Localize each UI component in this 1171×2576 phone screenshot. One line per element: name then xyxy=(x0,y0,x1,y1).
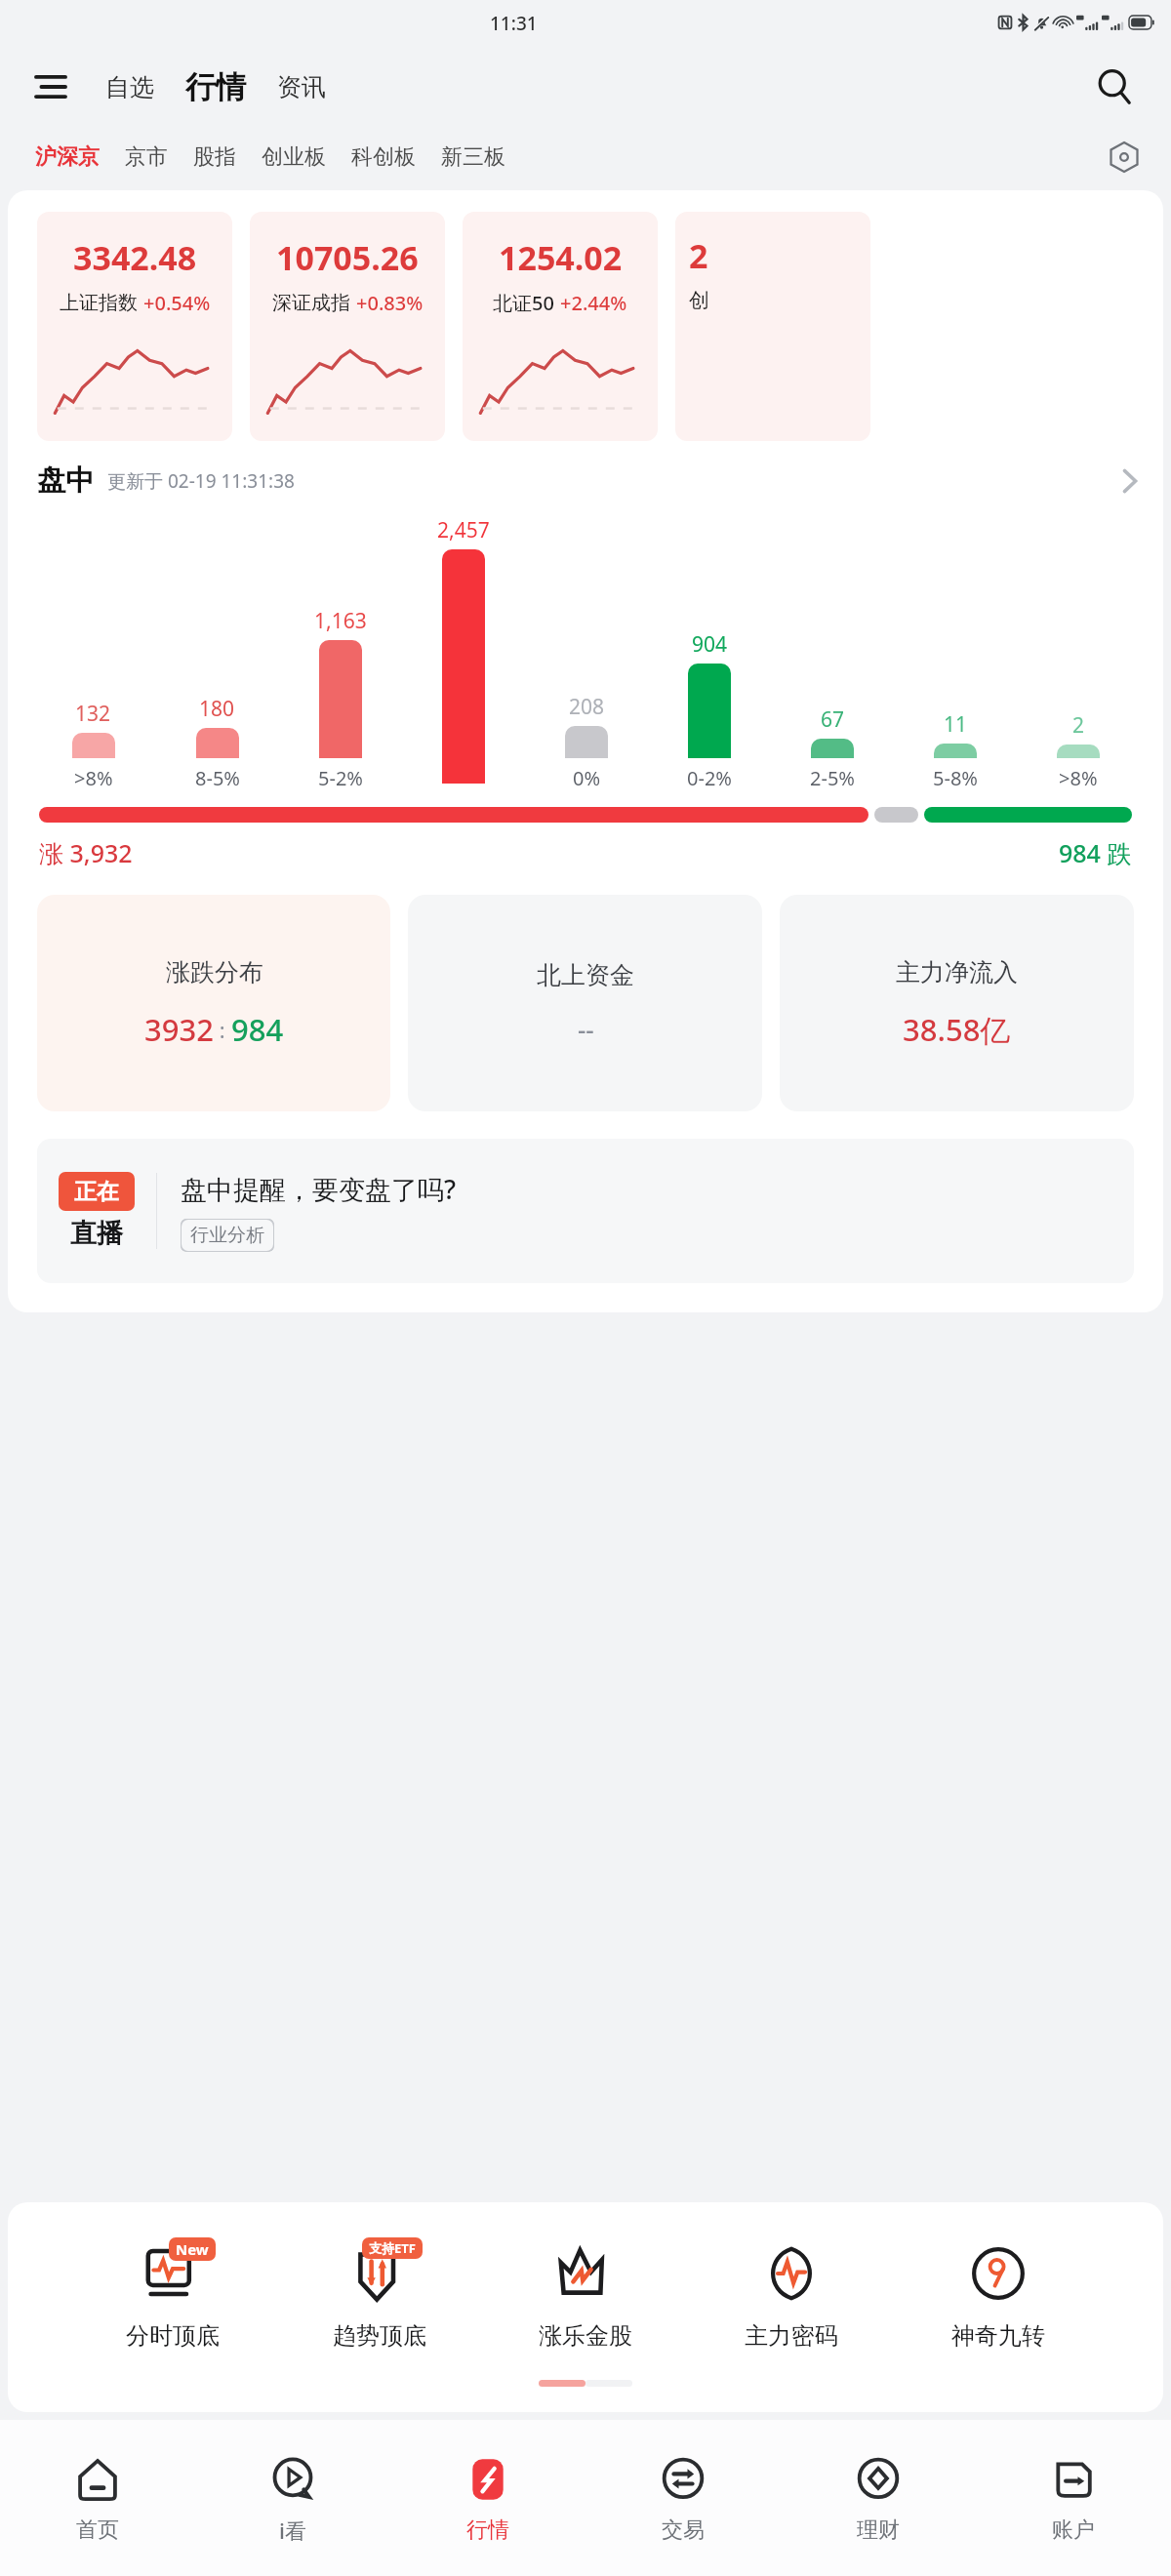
staticText: -- xyxy=(578,1012,594,1046)
staticText: >8% xyxy=(74,765,113,791)
staticText: 涨跌分布 xyxy=(166,957,263,987)
button[interactable]: Settings xyxy=(1099,132,1150,182)
staticText: 0% xyxy=(573,765,601,791)
staticText: 3342.48 xyxy=(73,235,197,280)
button[interactable]: 自选 xyxy=(98,72,162,102)
staticText: 0-2% xyxy=(687,765,732,791)
staticText: : xyxy=(214,1015,231,1044)
button[interactable]: 创业板 xyxy=(252,143,336,171)
staticText: 理财 xyxy=(857,2516,900,2544)
staticText: 2,457 xyxy=(437,516,490,544)
staticText: 行业分析 xyxy=(190,1224,264,1247)
staticText: 直播 xyxy=(70,1217,123,1250)
button[interactable]: 京市 xyxy=(115,143,178,171)
staticText: 208 xyxy=(569,693,605,721)
staticText: 支持ETF xyxy=(369,2239,416,2257)
staticText: 38.58亿 xyxy=(903,1009,1011,1050)
staticText: 创业板 xyxy=(262,143,326,171)
button[interactable]: 北上资金 xyxy=(408,895,762,1111)
staticText: 趋势顶底 xyxy=(333,2321,426,2351)
staticText: 11 xyxy=(944,710,968,739)
button[interactable]: 涨跌分布 xyxy=(37,895,390,1111)
button[interactable]: 账户 xyxy=(976,2420,1171,2576)
staticText: 67 xyxy=(821,705,845,734)
staticText: 北上资金 xyxy=(537,960,634,990)
staticText: >8% xyxy=(1059,765,1098,791)
staticText: 正在 xyxy=(74,1178,119,1206)
staticText: 行情 xyxy=(185,68,246,106)
staticText: 1254.02 xyxy=(499,235,623,280)
button[interactable]: 主力密码 xyxy=(741,2235,842,2351)
staticText: 2 xyxy=(1072,711,1085,740)
staticText: 深证成指 xyxy=(272,291,350,315)
button[interactable]: i看 xyxy=(195,2420,390,2576)
staticText: +0.83% xyxy=(356,290,424,316)
button[interactable]: 正在 xyxy=(37,1139,1134,1283)
staticText: 沪深京 xyxy=(35,143,100,171)
staticText: 上证指数 xyxy=(60,291,138,315)
staticText: 2-5% xyxy=(810,765,855,791)
staticText: 主力净流入 xyxy=(896,957,1018,987)
staticText: 北证50 xyxy=(493,290,554,316)
staticText: 10705.26 xyxy=(276,235,419,280)
button[interactable]: 涨乐金股 xyxy=(535,2235,636,2351)
button[interactable]: 股指 xyxy=(183,143,246,171)
button[interactable]: 10705.26 xyxy=(250,212,445,441)
staticText: 3932 xyxy=(144,1009,214,1050)
button[interactable]: New xyxy=(122,2235,223,2351)
button[interactable]: Menu xyxy=(23,60,78,114)
staticText: 180 xyxy=(199,695,235,723)
staticText: 科创板 xyxy=(351,143,416,171)
staticText: 创 xyxy=(689,288,709,313)
staticText: 更新于 02-19 11:31:38 xyxy=(107,468,295,494)
button[interactable]: Search xyxy=(1085,58,1144,116)
staticText: +0.54% xyxy=(143,290,211,316)
staticText: 账户 xyxy=(1052,2516,1095,2544)
button[interactable]: 神奇九转 xyxy=(948,2235,1049,2351)
button[interactable]: 3342.48 xyxy=(37,212,232,441)
staticText: 交易 xyxy=(662,2516,705,2544)
button[interactable]: 资讯 xyxy=(269,72,334,102)
button[interactable]: 新三板 xyxy=(431,143,515,171)
button[interactable]: 交易 xyxy=(585,2420,781,2576)
staticText: New xyxy=(176,2239,209,2259)
staticText: 分时顶底 xyxy=(126,2321,220,2351)
button[interactable]: 盘中 xyxy=(8,463,1163,499)
staticText: 1,163 xyxy=(314,607,367,635)
staticText: 984 xyxy=(231,1009,284,1050)
button[interactable]: 理财 xyxy=(781,2420,976,2576)
staticText: 132 xyxy=(75,700,111,728)
staticText: 股指 xyxy=(193,143,236,171)
staticText: 新三板 xyxy=(441,143,505,171)
staticText: 京市 xyxy=(125,143,168,171)
staticText: 涨 3,932 xyxy=(39,836,133,869)
staticText: 涨乐金股 xyxy=(539,2321,632,2351)
staticText: 2 xyxy=(689,233,708,278)
staticText: 盘中提醒，要变盘了吗? xyxy=(181,1171,457,1207)
staticText: 首页 xyxy=(76,2516,119,2544)
staticText: +2.44% xyxy=(560,290,627,316)
staticText: 8-5% xyxy=(195,765,240,791)
staticText: 5-8% xyxy=(933,765,978,791)
staticText: i看 xyxy=(279,2516,306,2545)
button[interactable]: 主力净流入 xyxy=(780,895,1134,1111)
staticText: 行情 xyxy=(466,2516,509,2544)
button[interactable]: 沪深京 xyxy=(25,143,109,171)
staticText: 904 xyxy=(692,630,728,659)
button[interactable]: 科创板 xyxy=(342,143,425,171)
button[interactable]: 2 xyxy=(675,212,870,441)
staticText: 神奇九转 xyxy=(951,2321,1045,2351)
staticText: 自选 xyxy=(105,72,154,102)
button[interactable]: 行情 xyxy=(390,2420,585,2576)
staticText: 11:31 xyxy=(490,11,538,36)
button[interactable]: 1254.02 xyxy=(463,212,658,441)
button[interactable]: 支持ETF xyxy=(329,2235,430,2351)
staticText: 资讯 xyxy=(277,72,326,102)
staticText: 5-2% xyxy=(318,765,363,791)
staticText: 主力密码 xyxy=(745,2321,838,2351)
staticText: 盘中 xyxy=(37,463,94,499)
staticText: 984 跌 xyxy=(1059,836,1132,869)
button[interactable]: 首页 xyxy=(0,2420,195,2576)
button[interactable]: 行情 xyxy=(180,68,252,106)
